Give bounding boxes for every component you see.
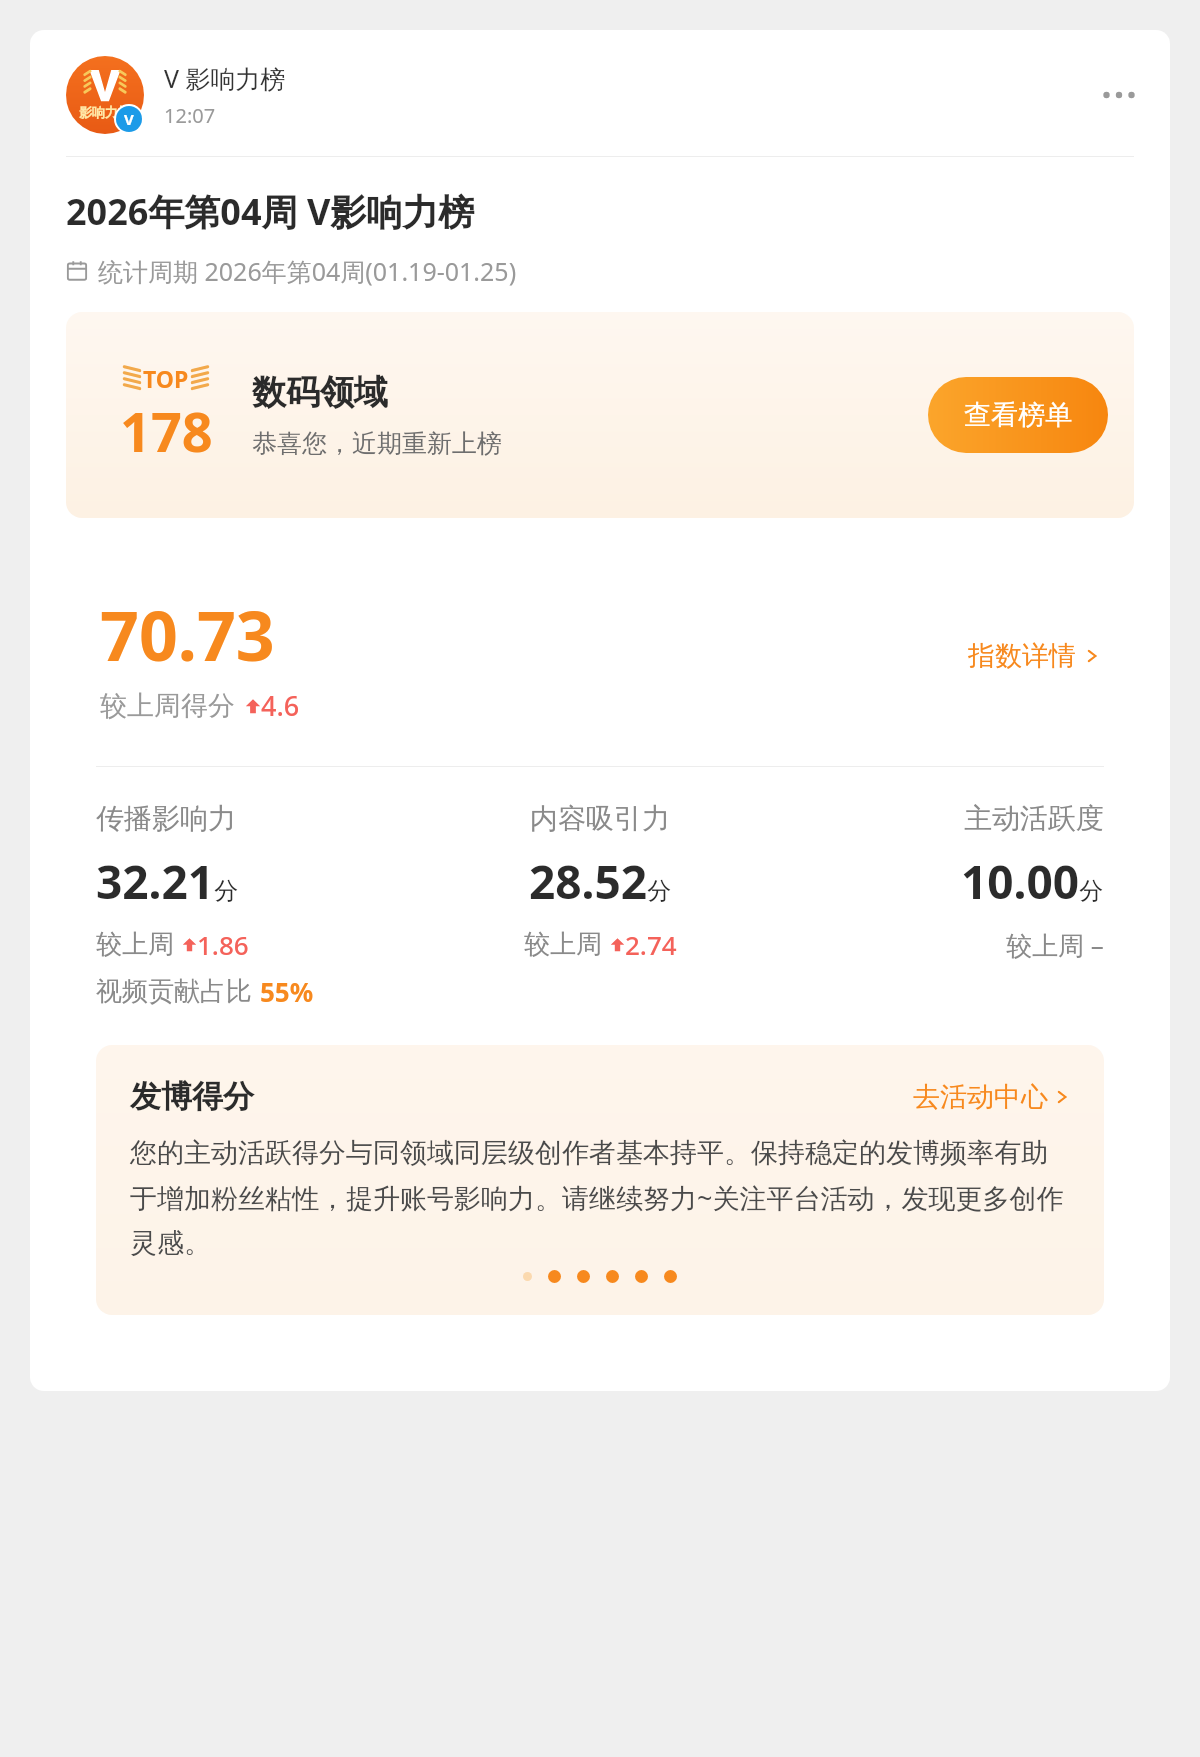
staticText: 查看榜单 — [964, 398, 1072, 432]
staticText: 1.86 — [197, 927, 249, 962]
staticText: 数码领域 — [252, 371, 388, 414]
staticText: 2026年第04周 V影响力榜 — [66, 187, 475, 236]
staticText: 影响力榜 — [79, 104, 131, 120]
staticText: 传播影响力 — [96, 801, 236, 836]
staticText: 10.00分 — [961, 850, 1104, 913]
staticText: 较上周 – — [1006, 927, 1104, 963]
staticText: 32.21分 — [96, 850, 239, 913]
staticText: 2.74 — [625, 927, 677, 962]
staticText: 4.6 — [261, 687, 300, 724]
staticText: 去活动中心 — [913, 1080, 1048, 1114]
staticText: 178 — [120, 394, 213, 468]
button[interactable]: 去活动中心 — [913, 1080, 1070, 1114]
staticText: 55% — [260, 974, 314, 1009]
button[interactable]: 指数详情 — [968, 639, 1100, 673]
staticText: 28.52分 — [529, 850, 672, 913]
staticText: 指数详情 — [968, 639, 1076, 673]
staticText: V — [124, 109, 134, 129]
staticText: 70.73 — [100, 588, 275, 681]
staticText: 较上周 — [96, 928, 174, 961]
staticText: 主动活跃度 — [964, 801, 1104, 836]
button[interactable]: TOP — [66, 312, 1134, 518]
staticText: 统计周期 2026年第04周(01.19-01.25) — [98, 254, 517, 288]
button[interactable]: 更多 — [1096, 72, 1142, 118]
staticText: 视频贡献占比 — [96, 975, 252, 1008]
staticText: 较上周得分 — [100, 689, 235, 723]
staticText: TOP — [143, 363, 189, 394]
staticText: 发博得分 — [130, 1077, 913, 1116]
staticText: 12:07 — [164, 102, 216, 129]
staticText: 内容吸引力 — [530, 801, 670, 836]
staticText: 您的主动活跃得分与同领域同层级创作者基本持平。保持稳定的发博频率有助于增加粉丝粘… — [130, 1136, 1070, 1260]
staticText: 恭喜您，近期重新上榜 — [252, 428, 502, 459]
staticText: V 影响力榜 — [164, 61, 286, 95]
button[interactable]: 查看榜单 — [928, 377, 1108, 453]
staticText: 较上周 — [524, 928, 602, 961]
